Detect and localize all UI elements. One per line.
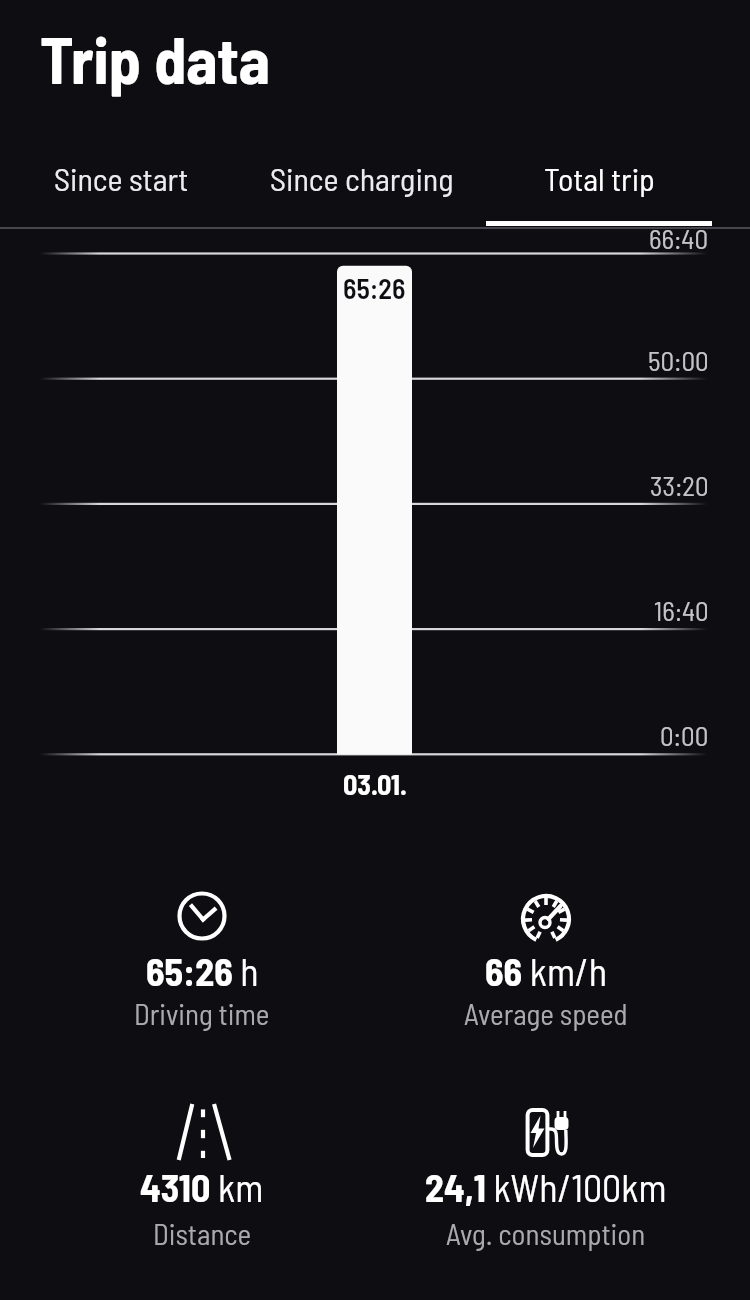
staticText: 4310 km (140, 1164, 264, 1210)
staticText: 03.01. (343, 767, 407, 801)
staticText: Average speed (464, 996, 628, 1031)
staticText: Since charging (270, 159, 454, 197)
staticText: 0:00 (660, 719, 709, 751)
staticText: 33:20 (650, 469, 709, 501)
staticText: Since start (54, 159, 189, 197)
staticText: 65:26 h (146, 948, 259, 994)
staticText: 16:40 (654, 594, 709, 626)
staticText: Trip data (40, 20, 270, 97)
staticText: Distance (153, 1216, 252, 1251)
button[interactable]: Since start (40, 147, 203, 209)
staticText: Avg. consumption (446, 1216, 646, 1251)
staticText: 50:00 (648, 344, 709, 376)
button[interactable]: Total trip (530, 147, 669, 209)
staticText: Total trip (544, 159, 655, 197)
staticText: 66 km/h (485, 948, 608, 994)
staticText: 65:26 (343, 271, 406, 305)
staticText: 66:40 (649, 222, 709, 254)
staticText: Driving time (134, 996, 270, 1031)
button[interactable]: Since charging (256, 147, 468, 209)
staticText: 24,1 kWh/100km (425, 1164, 667, 1210)
